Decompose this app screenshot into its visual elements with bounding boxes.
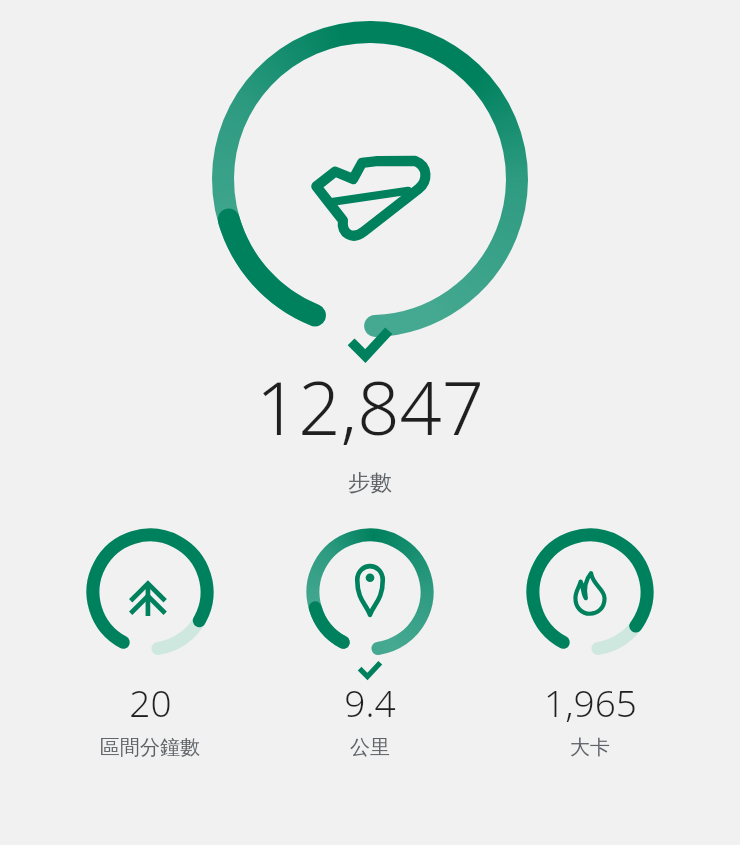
button[interactable]: Steps ring (200, 22, 540, 342)
staticText: 區間分鐘數 (100, 735, 200, 760)
staticText: 9.4 (344, 677, 396, 727)
staticText: 步數 (348, 469, 392, 497)
button[interactable]: 大卡 (520, 527, 660, 760)
button[interactable]: 區間分鐘數 (80, 527, 220, 760)
button[interactable]: 公里 (300, 527, 440, 760)
staticText: 20 (129, 677, 172, 727)
staticText: 大卡 (570, 735, 610, 760)
staticText: 1,965 (544, 677, 637, 727)
button[interactable]: 12,847 (256, 356, 484, 457)
staticText: 公里 (350, 735, 390, 760)
